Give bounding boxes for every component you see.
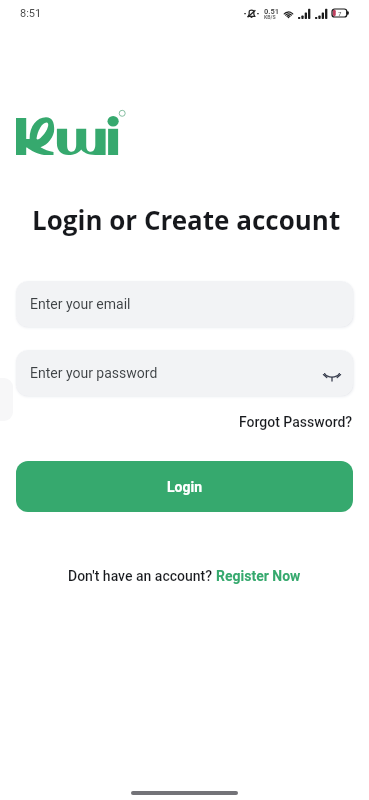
staticText: 0.51 [264, 7, 280, 16]
staticText: Login [167, 479, 203, 495]
staticText: KB/S [264, 14, 276, 20]
staticText: Don't have an account? [68, 568, 216, 584]
button[interactable]: Enter your email [16, 281, 353, 327]
staticText: Register Now [216, 568, 301, 584]
staticText: Enter your password [30, 365, 158, 381]
button[interactable]: Forgot Password? [239, 414, 353, 430]
button[interactable]: Enter your password [16, 350, 353, 396]
staticText: 7 [338, 10, 342, 17]
button[interactable]: Show password [319, 364, 345, 390]
staticText: Login or Create account [32, 202, 341, 237]
staticText: Enter your email [30, 296, 131, 312]
staticText: Forgot Password? [239, 414, 353, 430]
staticText: 8:51 [20, 7, 42, 20]
button[interactable]: Login [16, 461, 353, 512]
button[interactable]: Register Now [216, 568, 301, 584]
